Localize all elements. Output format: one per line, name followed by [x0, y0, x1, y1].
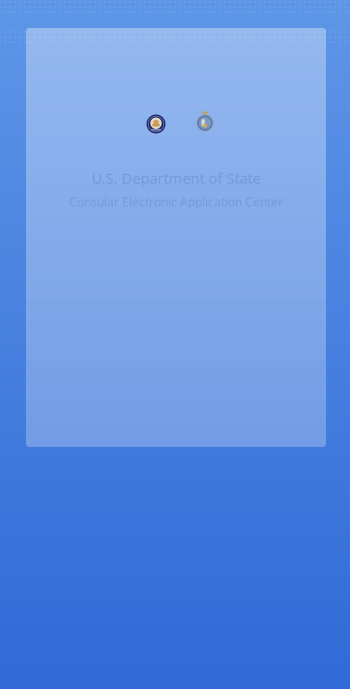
staticText: U.S. Department of State: [91, 168, 260, 188]
staticText: Consular Electronic Application Center: [69, 194, 283, 210]
